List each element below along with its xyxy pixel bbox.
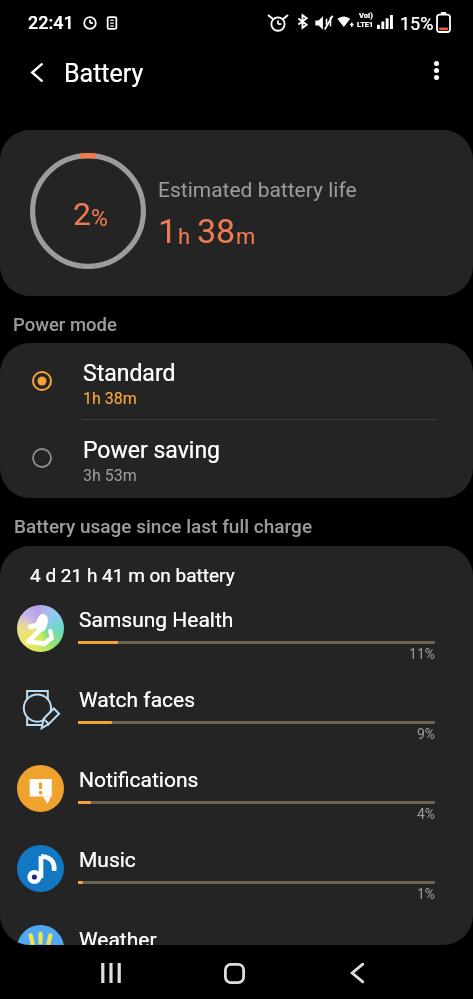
staticText: Notifications [79, 768, 199, 793]
staticText: 11% [78, 646, 435, 662]
staticText: VoI) [359, 11, 373, 20]
button[interactable]: Navigate up [16, 51, 58, 93]
button[interactable]: Watch faces [0, 672, 473, 752]
staticText: Power mode [13, 314, 117, 336]
staticText: h [178, 224, 191, 250]
staticText: 38 [197, 211, 236, 251]
staticText: 4% [78, 806, 435, 822]
staticText: Battery [64, 59, 144, 88]
button[interactable]: Samsung Health [0, 592, 473, 672]
button[interactable]: Home [200, 946, 268, 999]
staticText: 1 [158, 211, 178, 251]
staticText: Standard [83, 360, 176, 387]
staticText: Estimated battery life [158, 178, 357, 203]
button[interactable]: Weather [0, 912, 473, 945]
button[interactable]: More options [415, 49, 457, 91]
staticText: Battery usage since last full charge [14, 515, 313, 537]
staticText: 1% [78, 886, 435, 902]
staticText: Weather [79, 928, 157, 945]
staticText: 3h 53m [83, 466, 137, 485]
button[interactable]: Standard [0, 343, 473, 420]
staticText: 15% [400, 13, 434, 34]
staticText: m [236, 224, 256, 250]
button[interactable]: Music [0, 832, 473, 912]
staticText: 9% [78, 726, 435, 742]
staticText: Samsung Health [79, 608, 234, 633]
staticText: Power saving [83, 437, 221, 464]
staticText: 2 [73, 195, 91, 233]
staticText: % [91, 205, 108, 232]
staticText: Watch faces [79, 688, 196, 713]
staticText: 22:41 [28, 12, 74, 33]
staticText: LTE1 [357, 20, 374, 29]
button[interactable]: Notifications [0, 752, 473, 832]
button[interactable]: Recent apps [77, 946, 145, 999]
staticText: Music [79, 848, 136, 873]
staticText: 1h 38m [83, 389, 137, 408]
staticText: 4 d 21 h 41 m on battery [30, 564, 235, 586]
button[interactable]: Back [323, 946, 391, 999]
button[interactable]: Power saving [0, 420, 473, 497]
